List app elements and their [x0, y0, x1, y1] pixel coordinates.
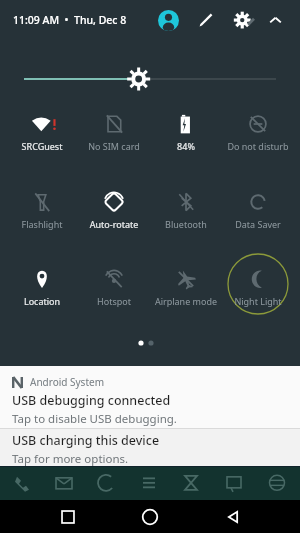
button[interactable]: No SIM card [78, 107, 150, 169]
staticText: 11:09 AM • Thu, Dec 8 [13, 13, 127, 27]
button[interactable]: Brightness [0, 62, 300, 96]
button[interactable]: Recents [55, 504, 81, 530]
staticText: Bluetooth [150, 218, 222, 230]
staticText: Location [6, 295, 78, 307]
staticText: Do not disturb [222, 140, 294, 152]
button[interactable]: Airplane mode [150, 262, 222, 324]
button[interactable]: Home [136, 503, 164, 531]
button[interactable]: Hotspot [78, 262, 150, 324]
staticText: Airplane mode [150, 295, 222, 307]
button[interactable]: Back [220, 504, 246, 530]
staticText: Auto-rotate [78, 218, 150, 230]
staticText: Android System [30, 375, 105, 389]
button[interactable]: Settings [233, 10, 254, 31]
button[interactable]: 84% [150, 107, 222, 169]
staticText: Tap to disable USB debugging. [12, 411, 177, 427]
button[interactable]: USB charging this device [0, 429, 300, 466]
button[interactable]: Data Saver [222, 185, 294, 247]
button[interactable]: Location [6, 262, 78, 324]
staticText: SRCGuest [6, 140, 78, 152]
staticText: Data Saver [222, 218, 294, 230]
button[interactable]: Night Light [222, 262, 294, 324]
button[interactable]: Auto-rotate [78, 185, 150, 247]
staticText: USB charging this device [12, 432, 160, 449]
button[interactable]: SRCGuest [6, 107, 78, 169]
button[interactable]: User [158, 10, 179, 31]
button[interactable]: Do not disturb [222, 107, 294, 169]
button[interactable]: Android System [0, 366, 300, 428]
staticText: Flashlight [6, 218, 78, 230]
staticText: Hotspot [78, 295, 150, 307]
staticText: Night Light [222, 295, 294, 307]
staticText: Tap for more options. [12, 451, 129, 466]
button[interactable]: Flashlight [6, 185, 78, 247]
staticText: No SIM card [78, 140, 150, 152]
button[interactable]: Bluetooth [150, 185, 222, 247]
staticText: USB debugging connected [12, 392, 171, 409]
staticText: 84% [150, 140, 222, 152]
button[interactable]: Edit [196, 10, 216, 30]
button[interactable]: Collapse [266, 11, 285, 30]
